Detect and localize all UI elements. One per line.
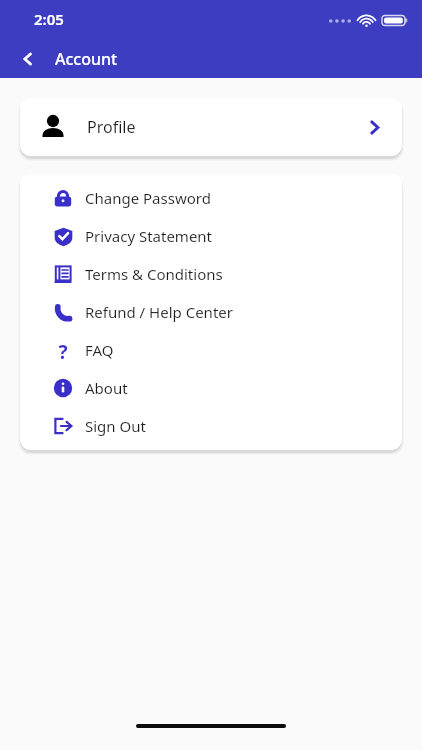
staticText: About	[85, 378, 128, 398]
button[interactable]: Change Password	[20, 179, 402, 217]
button[interactable]: Privacy Statement	[20, 217, 402, 255]
staticText: Privacy Statement	[85, 226, 213, 246]
staticText: Change Password	[85, 188, 211, 208]
staticText: Terms & Conditions	[85, 264, 223, 284]
button[interactable]: Terms & Conditions	[20, 255, 402, 293]
staticText: Sign Out	[85, 416, 146, 436]
staticText: Account	[55, 48, 118, 70]
staticText: Refund / Help Center	[85, 302, 233, 322]
staticText: ?	[58, 339, 68, 361]
button[interactable]: Sign Out	[20, 407, 402, 445]
staticText: 2:05	[34, 9, 64, 29]
button[interactable]: ?	[20, 331, 402, 369]
button[interactable]: Profile	[20, 98, 402, 156]
button[interactable]: Refund / Help Center	[20, 293, 402, 331]
staticText: FAQ	[85, 340, 114, 360]
staticText: Profile	[87, 116, 136, 138]
button[interactable]: About	[20, 369, 402, 407]
button[interactable]: Back	[14, 45, 42, 73]
